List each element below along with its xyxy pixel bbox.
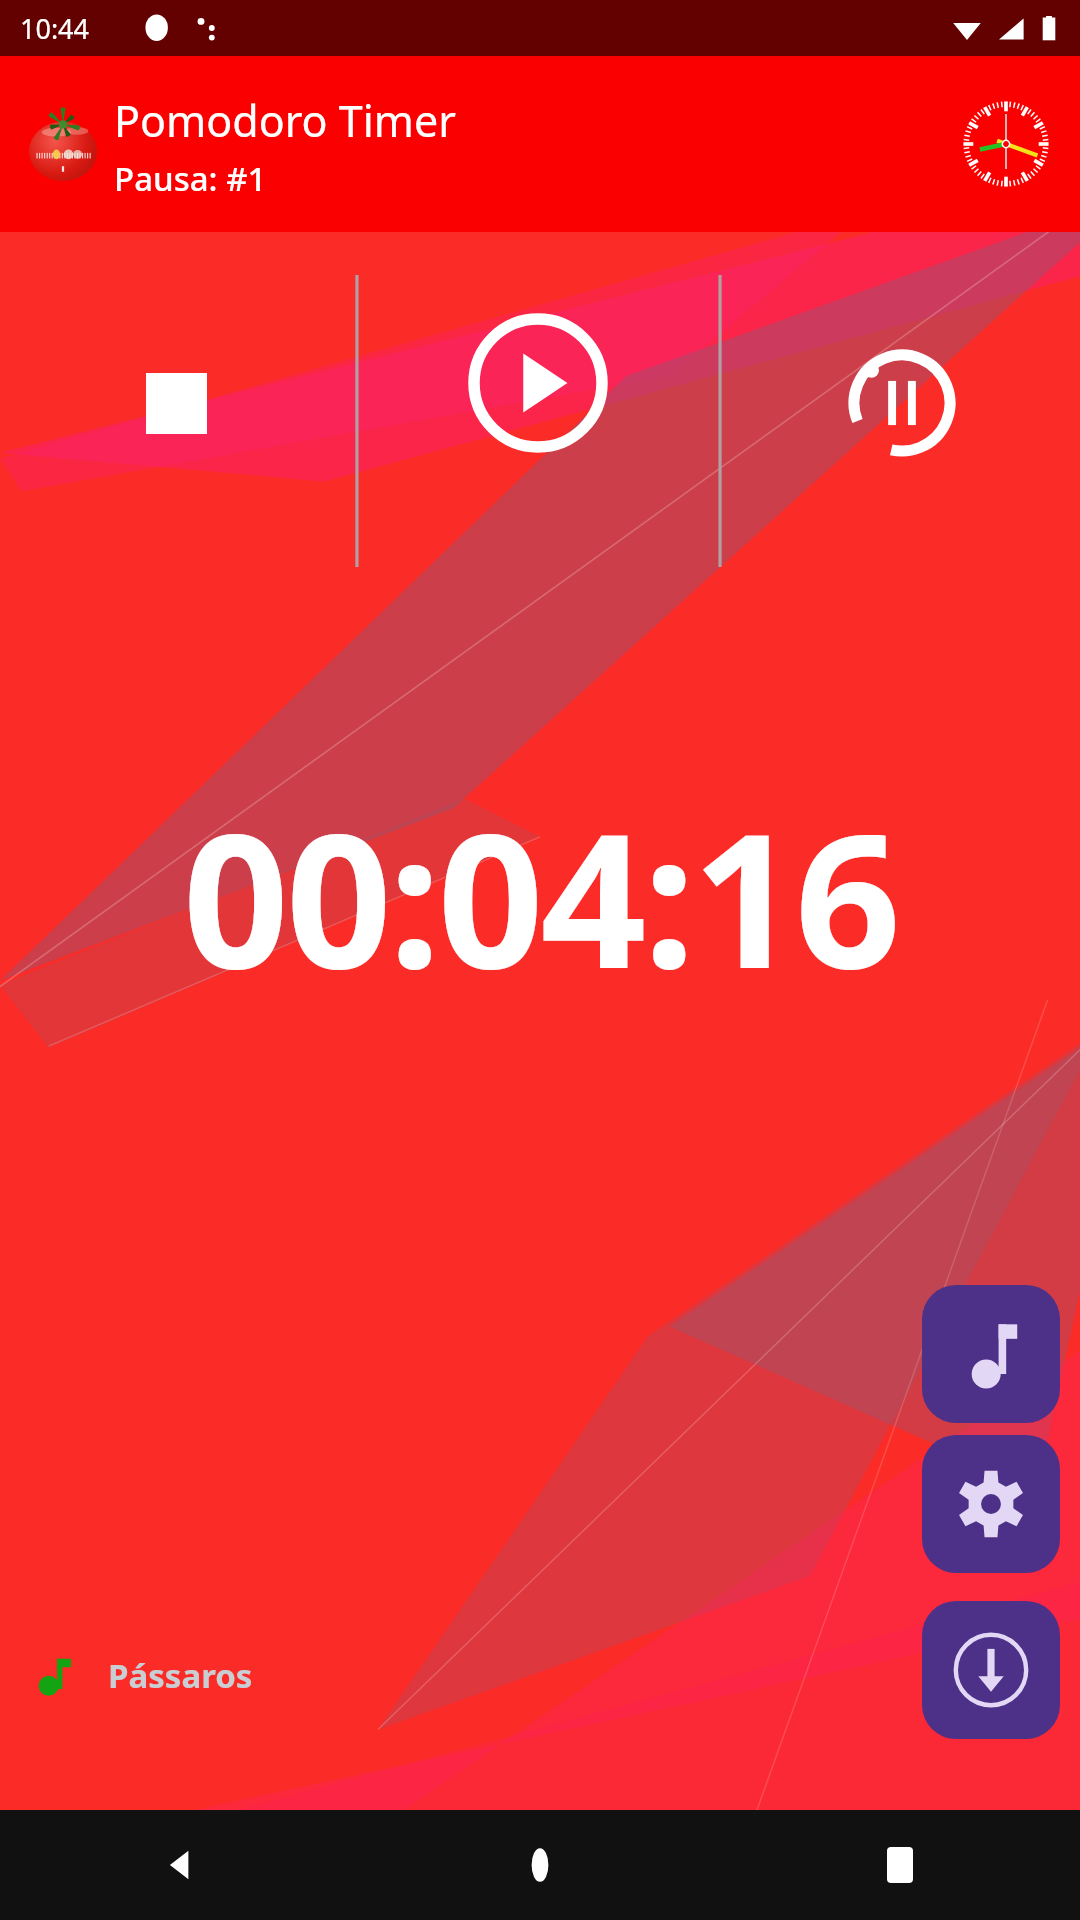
button[interactable]: Back <box>0 1810 360 1920</box>
button[interactable]: Pássaros <box>30 1648 253 1702</box>
button[interactable]: Pause <box>842 343 962 463</box>
button[interactable]: Clock <box>960 98 1052 190</box>
staticText: Pássaros <box>108 1653 253 1698</box>
staticText: Pausa: #1 <box>114 156 267 201</box>
button[interactable]: Settings <box>922 1435 1060 1573</box>
button[interactable]: Stop <box>116 343 236 463</box>
staticText: 10:44 <box>20 10 90 47</box>
staticText: 00:04:16 <box>183 770 898 1022</box>
button[interactable]: Play <box>468 313 608 453</box>
staticText: Pomodoro Timer <box>114 91 457 150</box>
button[interactable]: Recents <box>720 1810 1080 1920</box>
button[interactable]: Music <box>922 1285 1060 1423</box>
button[interactable]: Download <box>922 1601 1060 1739</box>
button[interactable]: Home <box>360 1810 720 1920</box>
